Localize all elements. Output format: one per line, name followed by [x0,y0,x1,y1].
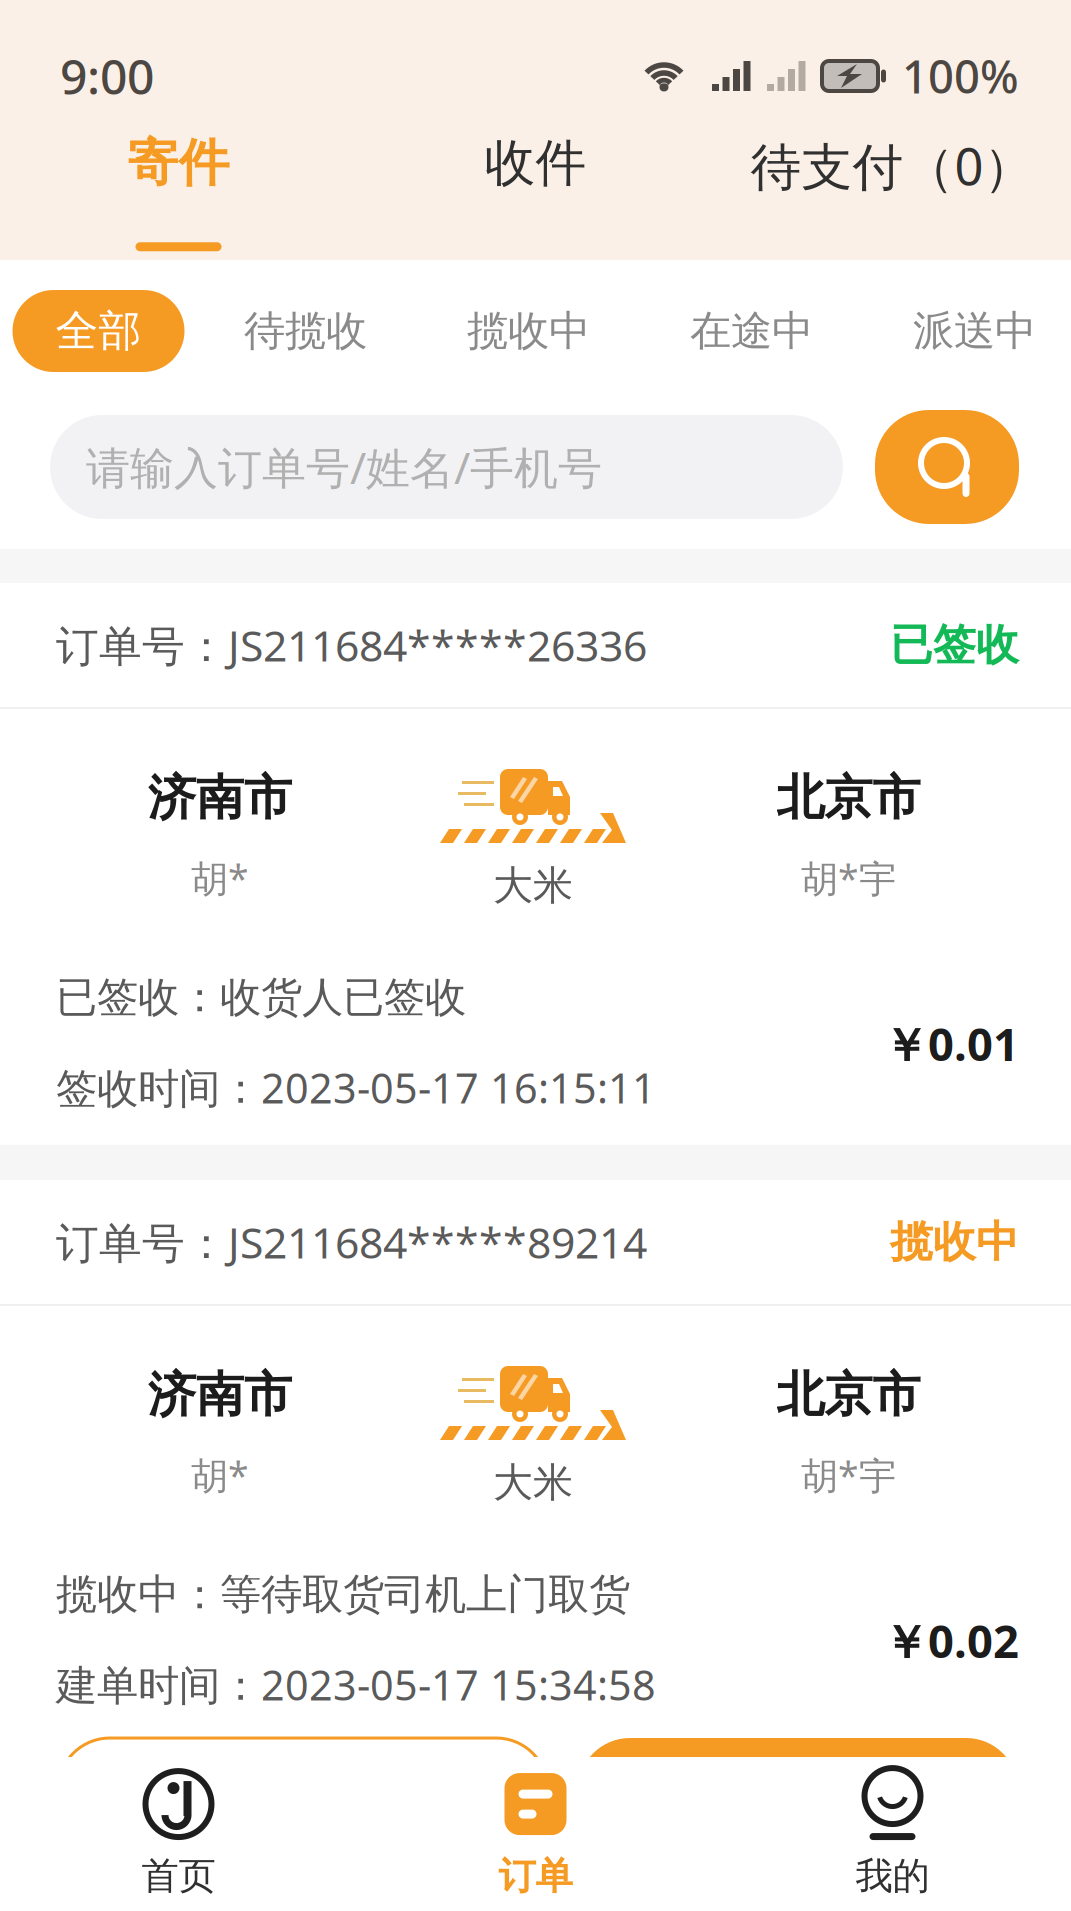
button[interactable]: 去支付 [578,1738,1018,1842]
staticText: 寄件 [127,132,229,194]
staticText: 北京市 [776,768,920,827]
staticText: 在途中 [690,306,813,356]
staticText: 济南市 [148,1365,292,1424]
button[interactable]: 订单号：JS211684*****89214 [0,1180,1071,1304]
staticText: 揽收中 [890,1216,1019,1268]
staticText: 建单时间：2023-05-17 15:34:58 [56,1657,656,1712]
staticText: 济南市 [148,768,292,827]
staticText: 首页 [141,1853,215,1899]
staticText: 请输入订单号/姓名/手机号 [86,438,602,496]
button[interactable]: 全部 [12,290,184,372]
button[interactable]: 收件 [357,132,714,260]
button[interactable]: 寄件 [0,132,357,260]
staticText: 胡*宇 [801,1450,896,1500]
staticText: ￥0.02 [883,1610,1019,1671]
staticText: 胡* [191,1450,249,1500]
button[interactable]: 我的 [714,1757,1071,1911]
button[interactable]: 派送中 [872,290,1071,372]
staticText: 胡* [191,853,249,903]
staticText: 签收时间：2023-05-17 16:15:11 [56,1060,656,1115]
button[interactable]: 搜索 [875,410,1019,524]
staticText: 订单号：JS211684*****89214 [56,1214,647,1270]
staticText: 9:00 [60,44,154,108]
staticText: 揽收中 [467,306,590,356]
staticText: 收件 [484,132,586,194]
button[interactable]: 首页 [0,1757,357,1911]
staticText: 已签收 [890,619,1019,671]
staticText: 订单 [498,1853,572,1899]
staticText: 大米 [493,861,573,910]
staticText: 胡*宇 [801,853,896,903]
button[interactable]: 取消订单 [58,1738,548,1842]
button[interactable]: 在途中 [649,290,853,372]
staticText: 已签收：收货人已签收 [56,972,466,1023]
button[interactable]: 揽收中 [426,290,630,372]
staticText: 待支付（0） [750,132,1034,199]
staticText: ￥0.01 [883,1013,1019,1074]
staticText: 我的 [855,1853,929,1899]
staticText: 揽收中：等待取货司机上门取货 [56,1569,630,1620]
staticText: 北京市 [776,1365,920,1424]
button[interactable]: 订单号：JS211684*****26336 [0,583,1071,707]
staticText: 大米 [493,1458,573,1507]
button[interactable]: 订单 [357,1757,714,1911]
button[interactable]: 待支付（0） [714,132,1071,260]
staticText: 全部 [55,305,141,357]
button[interactable]: 待揽收 [203,290,407,372]
staticText: 100% [902,46,1019,106]
staticText: 派送中 [913,306,1036,356]
staticText: 待揽收 [244,306,367,356]
staticText: 订单号：JS211684*****26336 [56,617,647,673]
